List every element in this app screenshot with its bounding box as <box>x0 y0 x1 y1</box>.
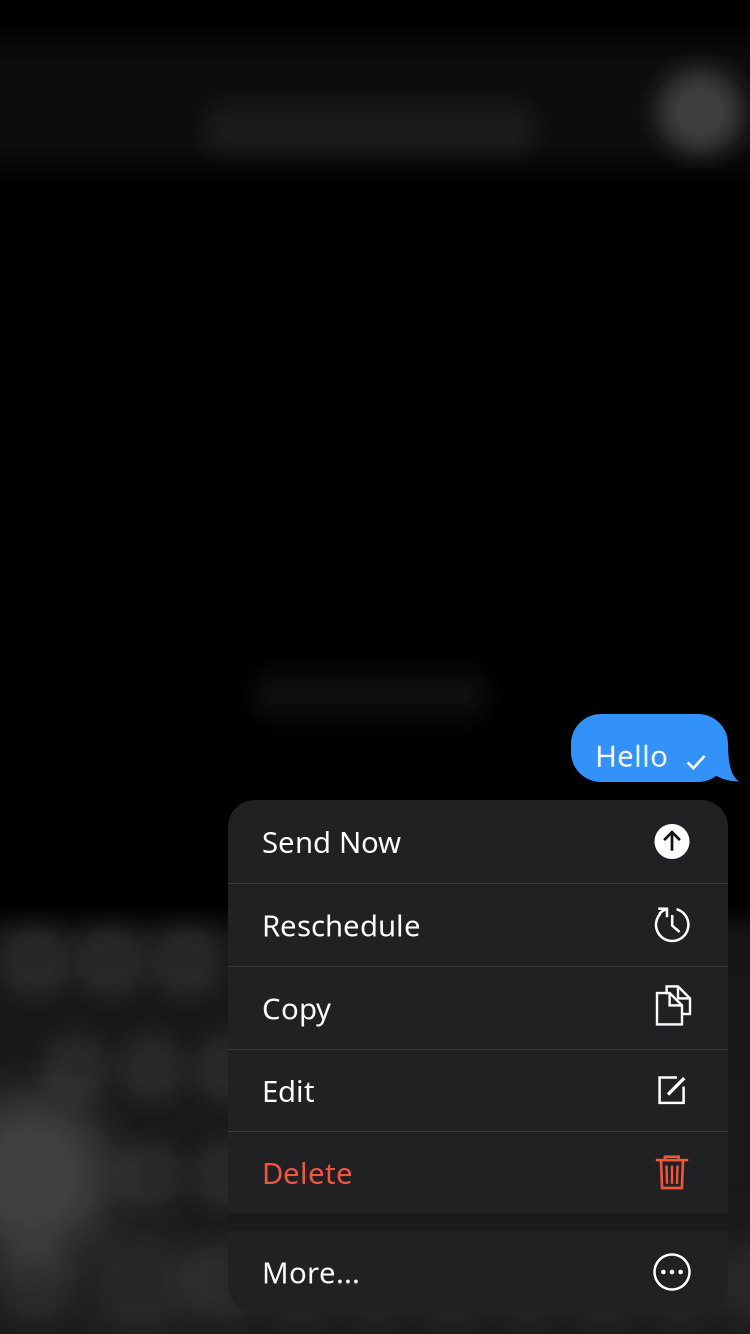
staticText: Reschedule <box>262 905 421 944</box>
staticText: Edit <box>262 1071 315 1110</box>
staticText: Hello <box>595 736 668 775</box>
staticText: Delete <box>262 1153 353 1192</box>
button[interactable]: Send Now <box>228 800 728 883</box>
button[interactable]: Copy <box>228 967 728 1049</box>
button[interactable]: Delete <box>228 1132 728 1213</box>
button[interactable]: More... <box>228 1231 728 1313</box>
staticText: More... <box>262 1252 360 1291</box>
staticText: Copy <box>262 988 331 1027</box>
button[interactable]: Edit <box>228 1050 728 1131</box>
staticText: Send Now <box>262 822 401 861</box>
button[interactable]: Reschedule <box>228 884 728 966</box>
